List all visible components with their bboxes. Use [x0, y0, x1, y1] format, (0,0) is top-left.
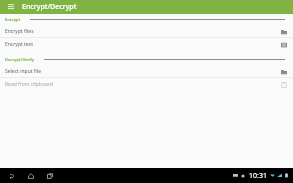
button[interactable]: Read from clipboard — [0, 78, 293, 90]
button[interactable]: Encrypt files — [0, 25, 293, 37]
staticText: Encrypt/Decrypt — [22, 2, 77, 12]
staticText: Encrypt text — [5, 41, 34, 48]
staticText: Encrypt files — [5, 28, 34, 35]
button[interactable]: Back — [6, 170, 17, 181]
staticText: Encrypt — [5, 17, 21, 22]
staticText: 10:31 — [249, 171, 267, 181]
staticText: Select input file — [5, 68, 41, 75]
button[interactable]: Select input file — [0, 65, 293, 77]
button[interactable]: Recent apps — [44, 170, 55, 181]
button[interactable]: Home — [25, 170, 36, 181]
staticText: Decrypt/Verify — [5, 57, 35, 62]
staticText: Read from clipboard — [5, 81, 53, 88]
button[interactable]: Open navigation drawer — [5, 1, 17, 13]
button[interactable]: Encrypt text — [0, 38, 293, 50]
